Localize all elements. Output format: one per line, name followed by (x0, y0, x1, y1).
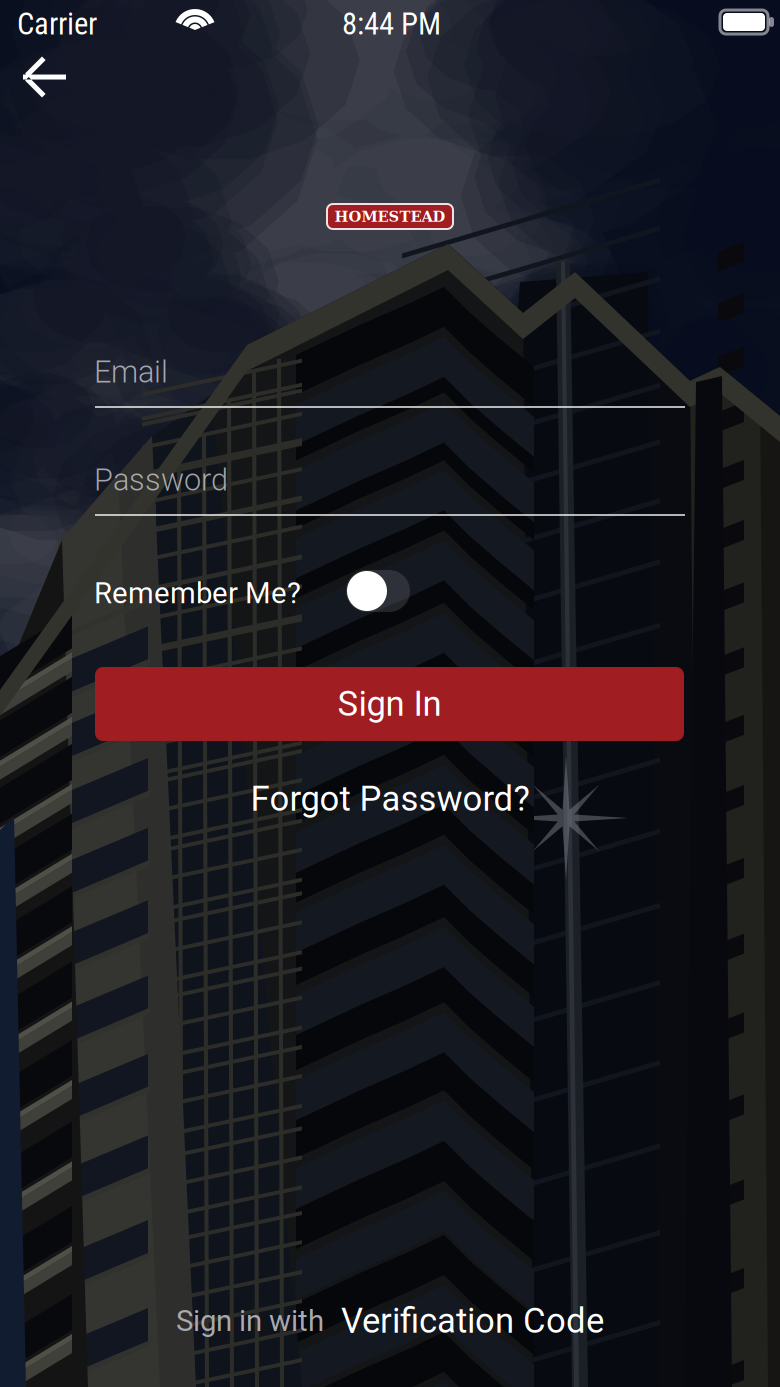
staticText: 8:44 PM (342, 6, 441, 42)
button[interactable]: Back (6, 46, 84, 108)
staticText: HOMESTEAD (334, 208, 445, 225)
staticText: Sign In (337, 684, 441, 724)
staticText: Carrier (17, 6, 97, 42)
button[interactable]: Sign In (95, 667, 684, 741)
button[interactable]: Sign in with (0, 1289, 780, 1353)
staticText: Email (94, 354, 168, 390)
staticText: Sign in with (176, 1304, 324, 1338)
button[interactable]: Forgot Password? (190, 771, 590, 827)
staticText: Password (94, 462, 228, 498)
staticText: Remember Me? (94, 576, 301, 610)
staticText: Forgot Password? (250, 779, 529, 819)
staticText: Verification Code (341, 1301, 604, 1341)
button[interactable]: Remember Me (346, 570, 410, 612)
